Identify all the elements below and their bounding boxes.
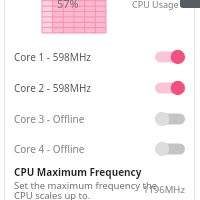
staticText: 1196MHz (143, 183, 185, 196)
staticText: Core 3 - Offline (14, 112, 85, 126)
button[interactable]: Core 4 - Offline (5, 138, 194, 160)
button[interactable]: Core enabled (155, 79, 185, 97)
staticText: Core 1 - 598MHz (14, 50, 92, 64)
staticText: Core 2 - 598MHz (14, 81, 92, 95)
staticText: Set the maximum frequency the (14, 179, 158, 192)
staticText: Core 4 - Offline (14, 142, 85, 156)
button[interactable]: Core 2 - 598MHz (5, 77, 194, 99)
button[interactable]: Core disabled (155, 140, 185, 158)
button[interactable]: Core disabled (155, 110, 185, 128)
staticText: CPU Maximum Frequency (14, 165, 142, 179)
staticText: 57% (57, 0, 79, 11)
button[interactable]: Options (180, 0, 200, 8)
button[interactable]: Core enabled (155, 48, 185, 66)
button[interactable]: Core 3 - Offline (5, 108, 194, 130)
staticText: CPU Usage (132, 0, 179, 10)
staticText: CPU scales up to. (14, 189, 91, 200)
button[interactable]: Core 1 - 598MHz (5, 46, 194, 68)
